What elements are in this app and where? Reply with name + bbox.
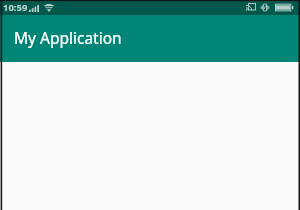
other: Screen cast <box>246 3 256 12</box>
button[interactable]: My Application <box>0 15 300 62</box>
other: Mobile signal strength <box>29 5 39 12</box>
other: Vibrate mode <box>260 3 270 12</box>
other: Battery full <box>275 3 294 12</box>
staticText: 10:59 <box>3 1 28 14</box>
staticText: My Application <box>14 27 122 48</box>
other: Wi-Fi connected <box>44 4 54 12</box>
